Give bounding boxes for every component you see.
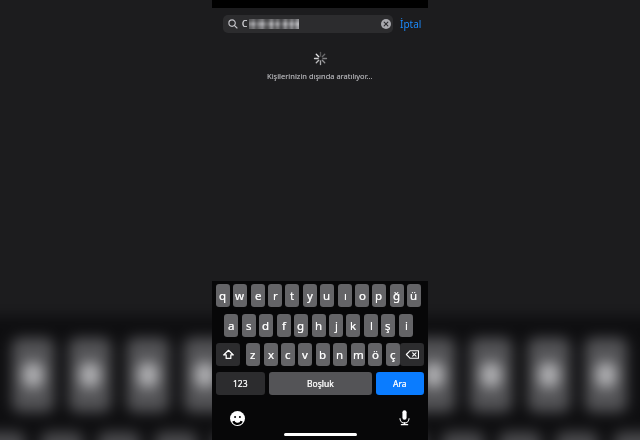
staticText: Ara (393, 378, 407, 390)
button[interactable]: i (399, 314, 413, 337)
button[interactable]: ö (368, 343, 382, 366)
button[interactable]: n (333, 343, 347, 366)
staticText: d (262, 318, 270, 334)
button[interactable]: İptal (400, 17, 422, 31)
staticText: r (273, 288, 278, 304)
button[interactable]: Emoji keyboard (230, 411, 245, 426)
button[interactable]: l (364, 314, 378, 337)
staticText: i (405, 318, 408, 334)
staticText: Kişilerinizin dışında aratılıyor... (267, 71, 373, 81)
button[interactable]: Ara (376, 372, 424, 395)
button[interactable]: z (246, 343, 260, 366)
button[interactable]: 123 (216, 372, 265, 395)
button[interactable]: Backspace (400, 343, 424, 366)
button[interactable]: r (268, 284, 282, 307)
staticText: İptal (400, 17, 422, 31)
button[interactable]: p (372, 284, 386, 307)
staticText: m (353, 347, 364, 363)
button[interactable]: ç (386, 343, 400, 366)
staticText: ğ (393, 288, 401, 304)
staticText: h (315, 318, 323, 334)
button[interactable]: t (285, 284, 299, 307)
button[interactable]: Shift (216, 343, 240, 366)
button[interactable]: y (303, 284, 317, 307)
button[interactable]: g (294, 314, 308, 337)
button[interactable]: a (224, 314, 238, 337)
button[interactable]: C (223, 15, 393, 33)
staticText: t (290, 288, 295, 304)
staticText: ö (372, 347, 379, 363)
button[interactable]: h (312, 314, 326, 337)
button[interactable]: m (351, 343, 365, 366)
staticText: ç (390, 347, 396, 363)
button[interactable]: o (355, 284, 369, 307)
staticText: a (228, 318, 235, 334)
staticText: Boşluk (307, 378, 334, 390)
staticText: o (359, 288, 366, 304)
button[interactable]: s (242, 314, 256, 337)
button[interactable]: c (281, 343, 295, 366)
button[interactable]: e (251, 284, 265, 307)
staticText: C (242, 18, 248, 30)
staticText: z (250, 347, 256, 363)
button[interactable]: d (259, 314, 273, 337)
staticText: x (268, 347, 275, 363)
staticText: ü (410, 288, 418, 304)
button[interactable]: k (346, 314, 360, 337)
button[interactable]: b (316, 343, 330, 366)
staticText: u (323, 288, 331, 304)
staticText: e (255, 288, 262, 304)
staticText: w (235, 288, 245, 304)
staticText: ı (344, 288, 347, 304)
staticText: y (307, 288, 313, 304)
staticText: s (246, 318, 252, 334)
button[interactable]: u (320, 284, 334, 307)
button[interactable]: q (216, 284, 230, 307)
staticText: n (336, 347, 344, 363)
staticText: 123 (233, 378, 248, 390)
staticText: l (370, 318, 373, 334)
button[interactable]: f (277, 314, 291, 337)
staticText: k (350, 318, 357, 334)
button[interactable]: x (264, 343, 278, 366)
button[interactable]: Dictation (398, 409, 411, 426)
staticText: j (335, 318, 338, 334)
staticText: ş (385, 318, 391, 334)
button[interactable]: ğ (390, 284, 404, 307)
staticText: v (302, 347, 308, 363)
staticText: f (282, 318, 286, 334)
button[interactable]: Clear text (381, 19, 391, 29)
staticText: q (219, 288, 227, 304)
button[interactable]: ı (338, 284, 352, 307)
button[interactable]: j (329, 314, 343, 337)
staticText: b (319, 347, 327, 363)
button[interactable]: ş (381, 314, 395, 337)
button[interactable]: Boşluk (269, 372, 372, 395)
staticText: g (297, 318, 305, 334)
button[interactable]: v (298, 343, 312, 366)
staticText: p (375, 288, 383, 304)
button[interactable]: w (233, 284, 247, 307)
staticText: c (285, 347, 291, 363)
button[interactable]: ü (407, 284, 421, 307)
